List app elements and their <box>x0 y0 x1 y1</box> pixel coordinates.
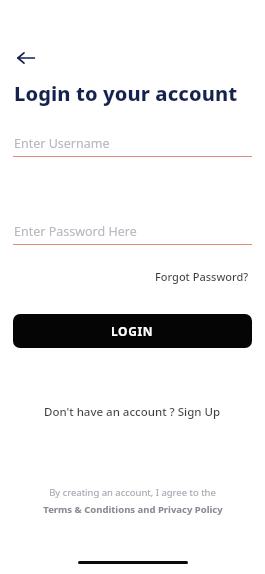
button[interactable]: Enter Username <box>13 135 252 157</box>
staticText: By creating an account, I agree to the <box>49 486 216 499</box>
staticText: Don't have an account ? Sign Up <box>44 404 221 420</box>
staticText: Enter Password Here <box>14 223 137 240</box>
button[interactable]: Don't have an account ? Sign Up <box>38 400 227 424</box>
staticText: Enter Username <box>14 135 110 152</box>
button[interactable]: Enter Password Here <box>13 223 252 245</box>
button[interactable]: LOGIN <box>13 314 252 348</box>
button[interactable]: Terms & Conditions and Privacy Policy <box>39 502 227 517</box>
staticText: Forgot Password? <box>155 269 249 284</box>
staticText: Terms & Conditions and Privacy Policy <box>43 503 223 516</box>
button[interactable]: Forgot Password? <box>153 267 251 286</box>
button[interactable]: Back <box>10 42 42 74</box>
staticText: LOGIN <box>111 323 154 339</box>
staticText: Login to your account <box>14 80 238 107</box>
